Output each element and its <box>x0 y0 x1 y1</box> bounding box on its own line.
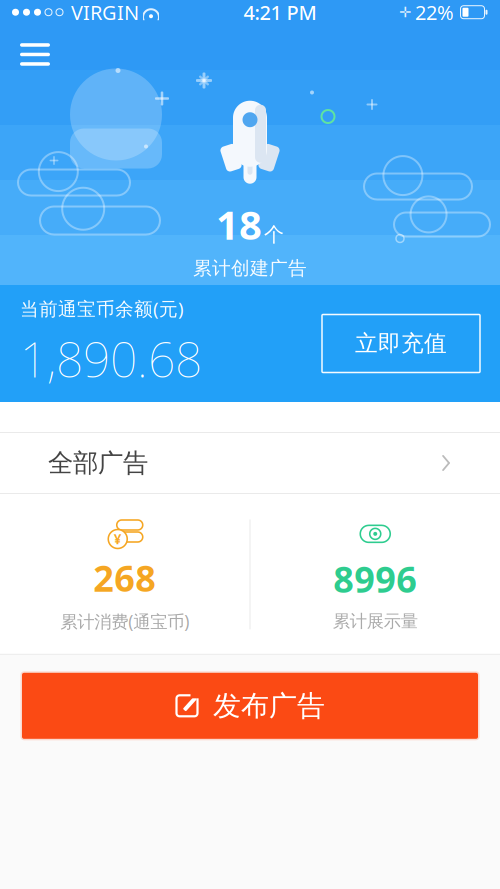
staticText: 22% <box>415 0 454 25</box>
staticText: 立即充值 <box>355 330 447 357</box>
button[interactable]: Menu <box>10 33 60 76</box>
staticText: 全部广告 <box>48 447 148 478</box>
staticText: 268 <box>93 554 156 602</box>
staticText: 1,890.68 <box>20 327 202 391</box>
staticText: 累计展示量 <box>333 611 418 632</box>
staticText: 个 <box>264 222 284 247</box>
staticText: VIRGIN <box>71 0 139 25</box>
staticText: 当前通宝币余额(元) <box>20 296 184 321</box>
button[interactable]: 全部广告 <box>0 432 500 494</box>
button[interactable]: 发布广告 <box>22 673 478 739</box>
staticText: 8996 <box>333 555 417 603</box>
staticText: 累计消费(通宝币) <box>60 610 189 633</box>
staticText: 4:21 PM <box>243 0 316 25</box>
button[interactable]: 立即充值 <box>322 314 480 372</box>
staticText: 发布广告 <box>213 689 325 723</box>
staticText: 18 <box>216 198 262 251</box>
staticText: 累计创建广告 <box>193 257 307 280</box>
staticText: ✛ <box>399 4 411 20</box>
staticText: ¥ <box>114 530 122 548</box>
